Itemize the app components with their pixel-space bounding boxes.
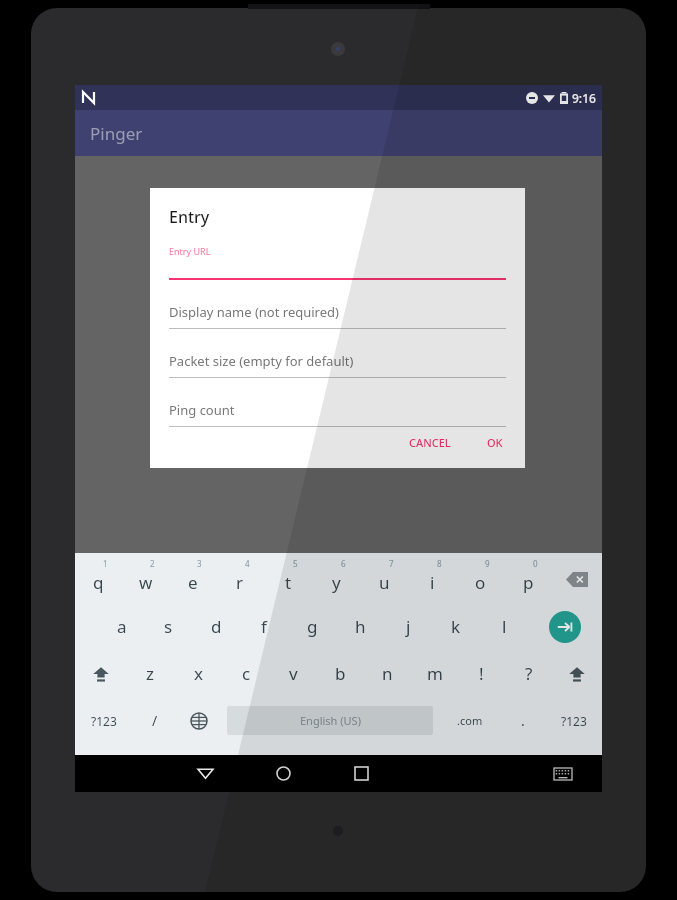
button[interactable]: Back [167, 755, 244, 792]
staticText: b [335, 662, 346, 685]
button[interactable]: Backspace [552, 556, 602, 603]
button[interactable]: 3 [169, 556, 216, 603]
button[interactable]: m [411, 650, 458, 697]
staticText: w [139, 571, 153, 594]
button[interactable]: ! [458, 650, 505, 697]
button[interactable]: 6 [312, 556, 360, 603]
staticText: Entry [169, 206, 210, 228]
button[interactable]: g [288, 603, 336, 650]
button[interactable]: Shift [552, 650, 602, 697]
button[interactable]: English (US) [227, 706, 433, 735]
button[interactable]: j [384, 603, 432, 650]
staticText: Packet size (empty for default) [169, 352, 354, 370]
staticText: l [502, 615, 507, 638]
staticText: e [188, 571, 198, 594]
staticText: 0 [533, 558, 538, 569]
staticText: ?123 [561, 713, 587, 729]
staticText: a [117, 615, 127, 638]
button[interactable]: s [145, 603, 192, 650]
button[interactable]: OK [479, 429, 511, 456]
staticText: u [379, 571, 390, 594]
staticText: 3 [197, 558, 202, 569]
staticText: 9:16 [572, 90, 596, 106]
button[interactable]: CANCEL [401, 429, 459, 456]
button[interactable]: Home [244, 755, 322, 792]
staticText: s [164, 615, 173, 638]
staticText: m [427, 662, 443, 685]
button[interactable]: z [126, 650, 174, 697]
button[interactable]: Recent apps [322, 755, 400, 792]
button[interactable]: Packet size (empty for default) [169, 352, 506, 378]
button[interactable]: Ping count [169, 401, 506, 427]
staticText: x [194, 662, 203, 685]
staticText: 8 [437, 558, 442, 569]
button[interactable]: c [222, 650, 270, 697]
staticText: ?123 [91, 713, 117, 729]
staticText: p [523, 571, 534, 594]
staticText: y [332, 571, 341, 594]
button[interactable]: Change language [177, 697, 221, 744]
button[interactable]: 5 [264, 556, 312, 603]
button[interactable]: Display name (not required) [169, 303, 506, 329]
staticText: q [93, 571, 104, 594]
button[interactable]: x [174, 650, 222, 697]
staticText: z [146, 662, 154, 685]
button[interactable]: v [270, 650, 317, 697]
staticText: g [307, 615, 318, 638]
staticText: 5 [293, 558, 298, 569]
staticText: Ping count [169, 401, 235, 419]
button[interactable]: 0 [504, 556, 552, 603]
staticText: 4 [245, 558, 250, 569]
staticText: ? [525, 662, 533, 685]
button[interactable]: / [133, 697, 177, 744]
button[interactable]: f [240, 603, 288, 650]
button[interactable]: 7 [360, 556, 408, 603]
staticText: k [451, 615, 461, 638]
staticText: Display name (not required) [169, 303, 339, 321]
staticText: Pinger [90, 122, 143, 145]
button[interactable]: 2 [122, 556, 169, 603]
staticText: c [242, 662, 251, 685]
button[interactable]: l [480, 603, 528, 650]
staticText: n [382, 662, 393, 685]
button[interactable]: Switch keyboard [524, 755, 602, 792]
staticText: / [152, 711, 158, 730]
staticText: 9 [485, 558, 490, 569]
button[interactable]: . [501, 697, 545, 744]
button[interactable]: 1 [75, 556, 122, 603]
staticText: English (US) [300, 713, 361, 728]
button[interactable]: n [364, 650, 411, 697]
staticText: 2 [150, 558, 155, 569]
staticText: Entry URL [169, 245, 211, 257]
staticText: d [211, 615, 222, 638]
staticText: v [289, 662, 298, 685]
button[interactable]: ? [505, 650, 552, 697]
button[interactable]: Shift [75, 650, 126, 697]
button[interactable]: 8 [408, 556, 456, 603]
button[interactable]: 9 [456, 556, 504, 603]
button[interactable]: k [432, 603, 480, 650]
staticText: .com [457, 713, 483, 728]
button[interactable]: .com [439, 697, 501, 744]
button[interactable]: h [336, 603, 384, 650]
staticText: CANCEL [409, 435, 451, 450]
button[interactable]: 4 [216, 556, 264, 603]
staticText: 1 [103, 558, 108, 569]
button[interactable]: Enter [528, 603, 602, 650]
staticText: 7 [389, 558, 394, 569]
staticText: j [406, 615, 411, 638]
button[interactable]: ?123 [545, 697, 602, 744]
staticText: ! [479, 662, 484, 685]
staticText: t [285, 571, 292, 594]
staticText: i [430, 571, 435, 594]
button[interactable]: d [192, 603, 240, 650]
staticText: 6 [341, 558, 346, 569]
staticText: h [355, 615, 366, 638]
button[interactable]: a [98, 603, 145, 650]
button[interactable]: ?123 [75, 697, 133, 744]
staticText: . [521, 711, 525, 730]
staticText: f [261, 615, 267, 638]
staticText: OK [487, 435, 503, 450]
staticText: o [475, 571, 486, 594]
button[interactable]: b [317, 650, 364, 697]
